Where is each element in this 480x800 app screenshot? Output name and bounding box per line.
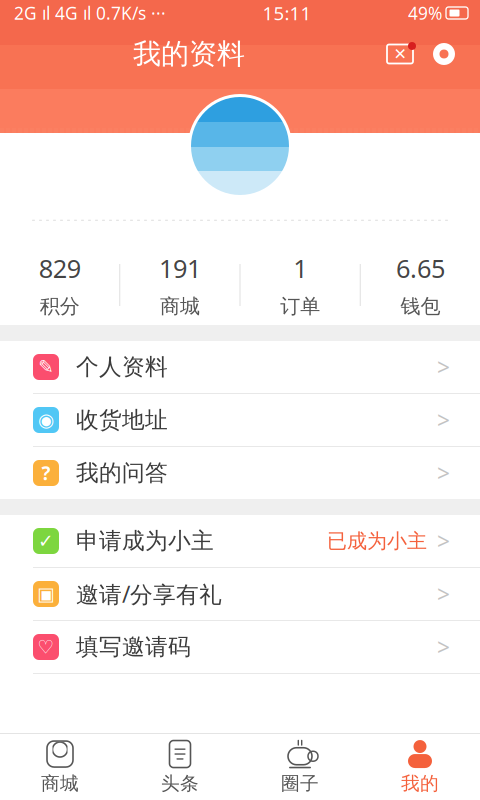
button[interactable]: 头条 xyxy=(120,733,240,800)
staticText: ✎ xyxy=(38,356,54,378)
staticText: 我的资料 xyxy=(133,37,245,71)
button[interactable]: 1 xyxy=(240,247,360,323)
staticText: 填写邀请码 xyxy=(76,633,191,661)
staticText: 圈子 xyxy=(281,772,319,795)
button[interactable]: ✎ xyxy=(0,341,480,393)
staticText: ◉ xyxy=(38,409,54,431)
staticText: 15:11 xyxy=(262,1,311,25)
button[interactable]: ▣ xyxy=(0,568,480,620)
button[interactable]: ? xyxy=(0,447,480,499)
staticText: 商城 xyxy=(41,772,79,795)
staticText: 829 xyxy=(39,251,81,285)
staticText: 收货地址 xyxy=(76,406,168,434)
staticText: 个人资料 xyxy=(76,353,168,381)
button[interactable]: ◉ xyxy=(0,394,480,446)
staticText: ♡ xyxy=(37,636,54,658)
button[interactable]: 6.65 xyxy=(361,247,480,323)
staticText: 商城 xyxy=(160,294,200,319)
staticText: 邀请/分享有礼 xyxy=(76,579,222,609)
button[interactable]: 191 xyxy=(120,247,239,323)
staticText: ? xyxy=(41,461,50,485)
button[interactable]: ♡ xyxy=(0,621,480,673)
staticText: 申请成为小主 xyxy=(76,527,214,555)
staticText: ✓ xyxy=(38,530,54,552)
staticText: 6.65 xyxy=(396,251,445,285)
staticText: 我的 xyxy=(401,772,439,795)
staticText: 1 xyxy=(293,251,307,285)
staticText: 钱包 xyxy=(400,294,440,319)
staticText: 191 xyxy=(159,251,201,285)
staticText: 49% xyxy=(408,1,442,24)
staticText: > xyxy=(437,458,450,488)
staticText: 头条 xyxy=(161,772,199,795)
button[interactable]: 829 xyxy=(0,247,119,323)
button[interactable]: 商城 xyxy=(0,733,120,800)
staticText: > xyxy=(437,632,450,662)
button[interactable]: 消息 xyxy=(378,32,422,76)
staticText: > xyxy=(437,405,450,435)
staticText: > xyxy=(437,352,450,382)
staticText: 已成为小主 xyxy=(327,529,427,553)
staticText: 我的问答 xyxy=(76,459,168,487)
button[interactable]: ✓ xyxy=(0,515,480,567)
button[interactable]: 设置 xyxy=(422,32,466,76)
staticText: 订单 xyxy=(280,294,320,319)
staticText: ✕ xyxy=(393,45,406,63)
staticText: ▣ xyxy=(37,583,55,605)
staticText: 2G ıl 4G ıl 0.7K/s ··· xyxy=(14,1,166,24)
button[interactable]: 我的 xyxy=(360,733,480,800)
button[interactable]: 圈子 xyxy=(240,733,360,800)
staticText: 积分 xyxy=(40,294,80,319)
staticText: > xyxy=(437,579,450,609)
staticText: > xyxy=(437,526,450,556)
staticText: 叶子 xyxy=(216,169,264,199)
